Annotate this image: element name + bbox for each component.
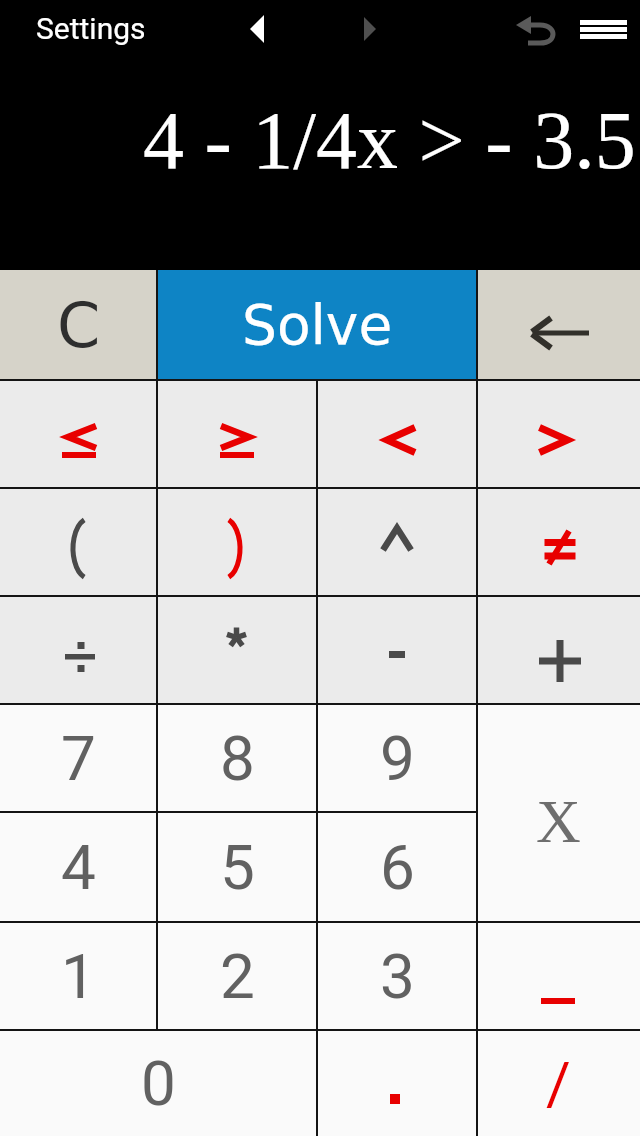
button[interactable] <box>0 596 157 704</box>
staticText: Settings <box>36 11 146 46</box>
staticText: Solve <box>242 293 393 357</box>
button[interactable] <box>477 488 640 596</box>
button[interactable]: C <box>0 270 157 380</box>
button[interactable] <box>572 8 634 52</box>
button[interactable] <box>477 380 640 488</box>
staticText: 2 <box>220 940 255 1013</box>
button[interactable] <box>157 488 317 596</box>
button[interactable] <box>157 596 317 704</box>
staticText: 7 <box>61 722 96 795</box>
button[interactable]: 9 <box>317 704 477 812</box>
button[interactable] <box>317 488 477 596</box>
button[interactable] <box>0 380 157 488</box>
button[interactable]: Solve <box>157 270 477 380</box>
button[interactable]: 5 <box>157 812 317 922</box>
button[interactable]: 7 <box>0 704 157 812</box>
button[interactable] <box>0 488 157 596</box>
staticText: 4 <box>61 831 96 904</box>
button[interactable]: 3 <box>317 922 477 1030</box>
button[interactable] <box>240 8 276 52</box>
button[interactable]: 6 <box>317 812 477 922</box>
staticText: 9 <box>380 722 415 795</box>
button[interactable] <box>317 596 477 704</box>
staticText: 6 <box>380 831 415 904</box>
staticText: X <box>536 787 581 856</box>
button[interactable]: / <box>477 1030 640 1136</box>
staticText: 0 <box>141 1047 176 1120</box>
button[interactable]: Settings <box>30 6 152 51</box>
button[interactable]: 0 <box>0 1030 317 1136</box>
button[interactable] <box>157 380 317 488</box>
button[interactable]: 8 <box>157 704 317 812</box>
button[interactable]: 4 <box>0 812 157 922</box>
button[interactable]: 1 <box>0 922 157 1030</box>
button[interactable] <box>317 380 477 488</box>
staticText: 8 <box>220 722 255 795</box>
staticText: 3 <box>380 940 415 1013</box>
staticText: 4 - 1/4x > - 3.5 <box>143 95 636 186</box>
button[interactable] <box>508 8 560 52</box>
button[interactable] <box>317 1030 477 1136</box>
staticText: 5 <box>220 831 255 904</box>
button[interactable] <box>477 270 640 380</box>
staticText: C <box>57 289 101 361</box>
button[interactable]: X <box>477 704 640 922</box>
button[interactable] <box>354 8 390 52</box>
staticText: 1 <box>61 940 96 1013</box>
staticText: / <box>546 1048 571 1118</box>
button[interactable]: 2 <box>157 922 317 1030</box>
button[interactable] <box>477 922 640 1030</box>
button[interactable] <box>477 596 640 704</box>
